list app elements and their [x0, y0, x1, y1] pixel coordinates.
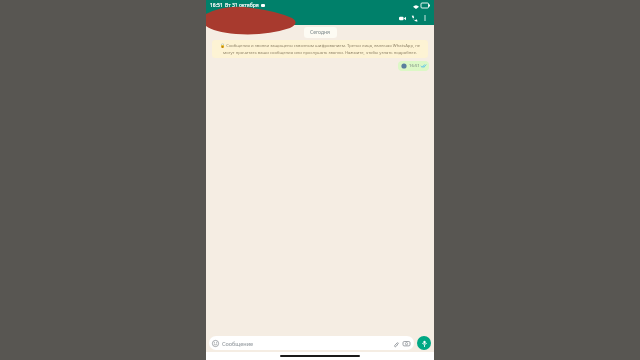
button[interactable]: Voice message: [417, 336, 431, 350]
staticText: 🔒 Сообщения и звонки защищены сквозным ш…: [217, 43, 423, 55]
staticText: 16:51: [409, 63, 420, 69]
button[interactable]: Video call: [396, 12, 408, 24]
staticText: 16:51: [210, 2, 223, 9]
button[interactable]: Attach: [391, 339, 400, 348]
staticText: Сообщение: [222, 340, 254, 347]
staticText: Вт 31 октября: [225, 2, 259, 9]
button[interactable]: 🔒 Сообщения и звонки защищены сквозным ш…: [212, 40, 428, 58]
button[interactable]: Call: [408, 12, 420, 24]
button[interactable]: 16:51: [398, 61, 429, 71]
button[interactable]: Сообщение: [209, 336, 414, 350]
button[interactable]: Контакт: [233, 11, 396, 25]
button[interactable]: More options: [420, 13, 430, 23]
button[interactable]: Camera: [402, 339, 411, 348]
staticText: Сегодня: [310, 29, 331, 36]
